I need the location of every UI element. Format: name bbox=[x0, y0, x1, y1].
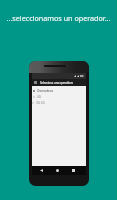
button[interactable]: 3G 2G bbox=[32, 101, 86, 104]
button[interactable]: Back bbox=[38, 166, 44, 175]
staticText: Selecciona una operadora bbox=[40, 81, 73, 85]
button[interactable]: 4G bbox=[32, 95, 86, 98]
button[interactable]: Menu bbox=[32, 79, 86, 86]
button[interactable]: Recents bbox=[70, 166, 76, 175]
button[interactable]: Operadora bbox=[32, 89, 86, 92]
staticText: Operadora bbox=[37, 89, 53, 92]
button[interactable]: Home bbox=[54, 166, 60, 175]
staticText: ...seleccionamos un operador... bbox=[0, 13, 117, 23]
staticText: 3G 2G bbox=[36, 101, 45, 104]
staticText: 4G bbox=[37, 95, 41, 98]
